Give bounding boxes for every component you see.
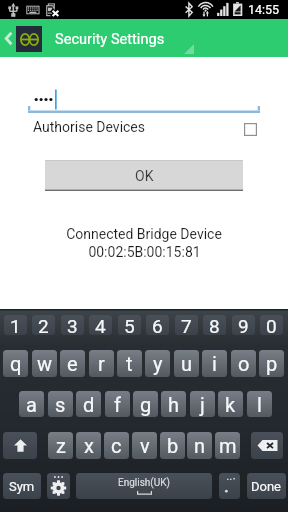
button[interactable]: 4 [89,315,112,335]
button[interactable]: Space [76,473,212,499]
button[interactable]: Authorise Devices [0,117,288,137]
staticText: g [140,393,152,416]
staticText: z [56,434,66,457]
staticText: English(UK) [118,477,171,489]
button[interactable] [28,88,260,114]
staticText: x [84,434,94,457]
button[interactable]: r [89,350,114,377]
button[interactable]: p [259,350,284,377]
button[interactable]: j [190,391,215,417]
button[interactable]: 0 [260,315,283,335]
staticText: c [111,434,122,457]
staticText: r [98,352,105,375]
button[interactable]: 2 [32,315,55,335]
staticText: a [26,393,37,416]
staticText: Security Settings [55,30,165,47]
staticText: j [200,393,205,416]
staticText: 7 [181,315,192,335]
button[interactable]: Backspace [251,432,283,459]
staticText: i [212,352,217,375]
staticText: 00:02:5B:00:15:81 [88,244,201,260]
staticText: s [55,393,66,416]
button[interactable]: 5 [118,315,141,335]
staticText: OK [135,168,154,184]
button[interactable]: w [32,350,57,377]
button[interactable]: 7 [175,315,198,335]
staticText: h [168,393,180,416]
button[interactable]: Navigate up [0,19,16,57]
staticText: m [219,434,237,457]
button[interactable]: q [3,350,28,377]
button[interactable]: m [215,432,240,459]
staticText: 14:55 [248,2,280,17]
staticText: 1 [10,315,21,335]
button[interactable]: e [60,350,85,377]
button[interactable]: Done [247,473,286,499]
button[interactable]: Punctuation [219,473,240,499]
staticText: u [181,352,193,375]
button[interactable]: x [76,432,101,459]
staticText: Sym [9,479,35,494]
staticText: 0 [266,315,277,335]
button[interactable]: f [105,391,130,417]
button[interactable]: v [132,432,157,459]
button[interactable]: s [48,391,73,417]
button[interactable]: l [247,391,272,417]
button[interactable]: App icon [16,26,42,52]
staticText: b [167,434,179,457]
button[interactable]: a [19,391,44,417]
staticText: y [153,352,163,375]
button[interactable]: t [117,350,142,377]
button[interactable]: h [161,391,186,417]
staticText: 5 [124,315,135,335]
button[interactable]: Shift [3,432,37,459]
staticText: l [257,393,262,416]
button[interactable]: o [231,350,256,377]
staticText: 3 [67,315,78,335]
staticText: 8 [209,315,220,335]
staticText: Connected Bridge Device [66,226,222,242]
staticText: n [194,434,206,457]
staticText: k [225,393,236,416]
staticText: q [10,352,22,375]
button[interactable]: k [218,391,243,417]
button[interactable]: Sym [3,473,41,499]
button[interactable]: i [202,350,227,377]
button[interactable]: z [48,432,73,459]
staticText: o [238,352,250,375]
staticText: Done [251,479,282,494]
staticText: f [114,393,121,416]
staticText: e [67,352,78,375]
staticText: w [37,352,53,375]
button[interactable]: n [187,432,212,459]
button[interactable]: b [160,432,185,459]
staticText: v [140,434,150,457]
staticText: Authorise Devices [33,119,146,135]
button[interactable]: g [133,391,158,417]
button[interactable]: OK [45,160,243,191]
staticText: p [266,352,278,375]
button[interactable]: 8 [203,315,226,335]
button[interactable]: 1 [4,315,27,335]
button[interactable]: y [145,350,170,377]
staticText: t [126,352,133,375]
button[interactable]: Keyboard settings [47,473,70,499]
staticText: 9 [238,315,249,335]
button[interactable]: u [174,350,199,377]
staticText: 6 [152,315,163,335]
button[interactable]: 6 [146,315,169,335]
staticText: 4 [95,315,106,335]
staticText: d [83,393,95,416]
button[interactable]: 3 [61,315,84,335]
button[interactable]: d [76,391,101,417]
button[interactable]: c [104,432,129,459]
staticText: 2 [38,315,49,335]
button[interactable]: 9 [232,315,255,335]
